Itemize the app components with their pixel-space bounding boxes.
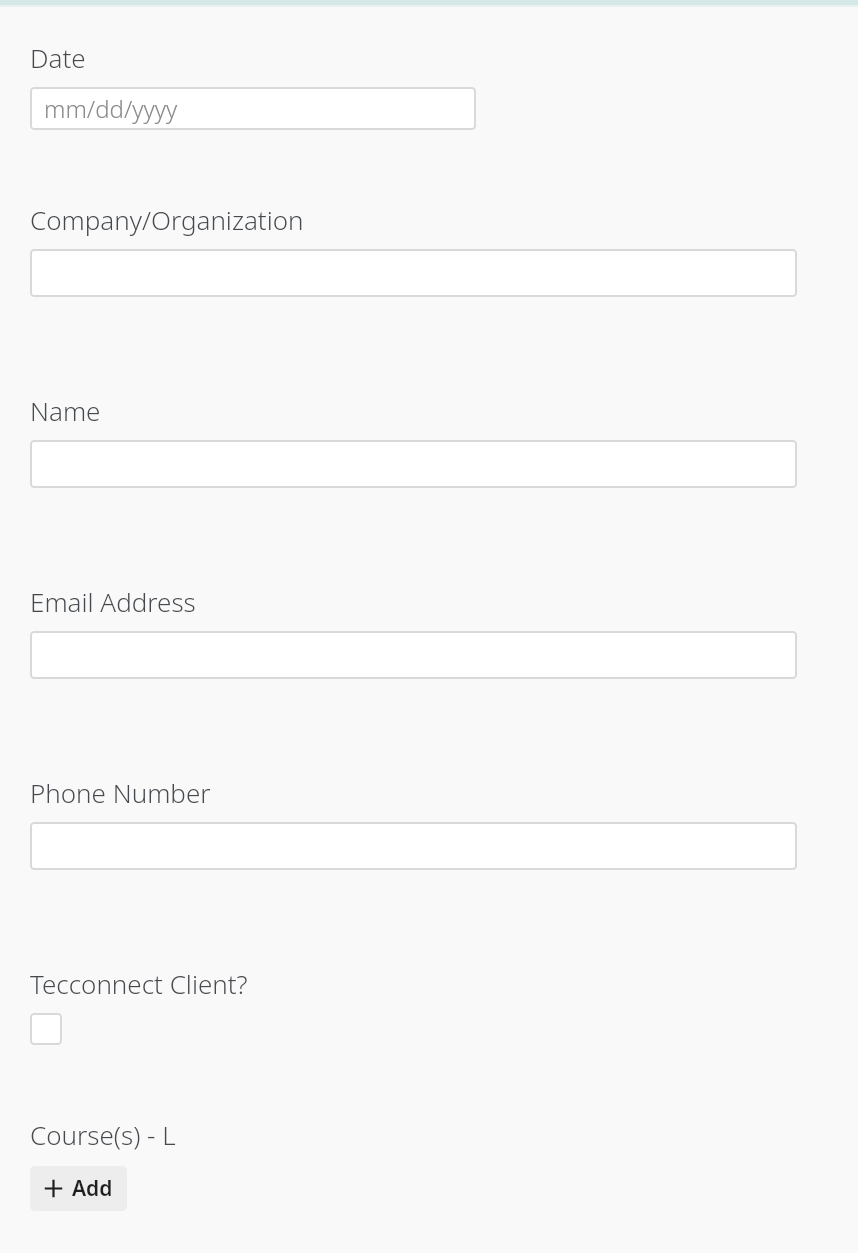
button[interactable] [30,822,797,870]
button[interactable]: Add [30,1166,127,1211]
staticText: Email Address [30,584,196,619]
button[interactable] [30,631,797,679]
staticText: Date [30,40,86,75]
button[interactable]: Tecconnect Client checkbox [30,1013,62,1045]
staticText: Course(s) - L [30,1117,176,1152]
staticText: Tecconnect Client? [30,966,248,1001]
button[interactable] [30,249,797,297]
staticText: Add [72,1174,113,1203]
staticText: Phone Number [30,775,211,810]
button[interactable] [30,440,797,488]
staticText: mm/dd/yyyy [44,92,178,125]
button[interactable]: mm/dd/yyyy [30,87,476,130]
staticText: Company/Organization [30,202,304,237]
staticText: Name [30,393,101,428]
